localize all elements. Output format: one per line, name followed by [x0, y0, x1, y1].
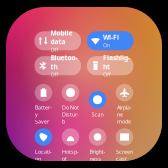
staticText: Battery Saver: [35, 104, 52, 125]
staticText: Screen cast: [116, 148, 133, 162]
staticText: On: [103, 42, 110, 49]
button[interactable]: Mobile data: [34, 31, 81, 50]
staticText: Mobile data: [50, 28, 72, 46]
button[interactable]: Screen cast: [116, 128, 133, 162]
staticText: Scan: [91, 111, 103, 118]
button[interactable]: Battery Saver: [35, 84, 52, 125]
button[interactable]: Brightness: [89, 128, 106, 162]
staticText: Hotspot: [62, 148, 79, 162]
button[interactable]: Hotspot: [62, 128, 79, 162]
staticText: Do Not Disturb: [62, 104, 79, 125]
button[interactable]: Wi-Fi: [87, 31, 133, 50]
staticText: Off: [50, 71, 58, 78]
button[interactable]: Do Not Disturb: [62, 84, 79, 125]
staticText: Brightness: [89, 148, 105, 162]
button[interactable]: Flashlight: [87, 56, 133, 75]
staticText: Off: [50, 46, 58, 53]
button[interactable]: Bluetooth: [34, 56, 81, 75]
staticText: Location: [35, 148, 52, 162]
staticText: Wi-Fi: [103, 33, 119, 42]
button[interactable]: Location: [35, 128, 52, 162]
staticText: Off: [103, 71, 111, 78]
staticText: Flashlight: [103, 53, 130, 71]
staticText: Bluetooth: [50, 53, 77, 71]
staticText: Airplane mode: [117, 104, 132, 125]
button[interactable]: Airplane mode: [116, 84, 133, 125]
button[interactable]: Scan: [89, 91, 106, 118]
